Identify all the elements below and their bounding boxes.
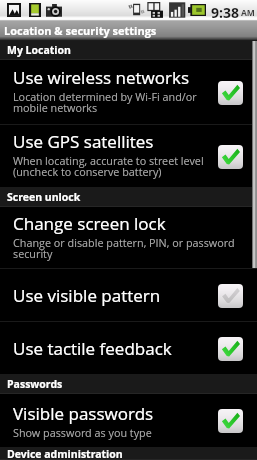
button[interactable]: Visible passwords: [0, 394, 257, 448]
staticText: AM: [241, 7, 255, 19]
button[interactable]: Use wireless networks: [0, 60, 257, 125]
staticText: Change or disable pattern, PIN, or passw…: [13, 235, 235, 250]
button[interactable]: Change screen lock: [0, 207, 257, 269]
button[interactable]: Use tactile feedback: [0, 322, 257, 375]
staticText: Show password as you type: [13, 425, 152, 440]
button[interactable]: Use visible pattern: [0, 269, 257, 322]
staticText: Use wireless networks: [13, 66, 190, 89]
staticText: Visible passwords: [13, 402, 154, 425]
staticText: Use GPS satellites: [13, 130, 154, 153]
staticText: When locating, accurate to street level: [13, 153, 204, 168]
staticText: mobile networks: [13, 100, 98, 115]
staticText: Location & security settings: [4, 23, 157, 38]
staticText: Passwords: [7, 377, 63, 391]
staticText: Location determined by Wi-Fi and/or: [13, 89, 197, 104]
staticText: Device administration: [7, 447, 123, 459]
staticText: Use tactile feedback: [13, 337, 172, 360]
staticText: (uncheck to conserve battery): [13, 164, 162, 179]
staticText: Screen unlock: [7, 190, 81, 204]
staticText: security: [13, 246, 53, 261]
staticText: Use visible pattern: [13, 284, 161, 307]
staticText: 9:38: [211, 3, 239, 22]
staticText: Change screen lock: [13, 212, 166, 235]
button[interactable]: Use GPS satellites: [0, 125, 257, 188]
staticText: My Location: [7, 43, 71, 57]
